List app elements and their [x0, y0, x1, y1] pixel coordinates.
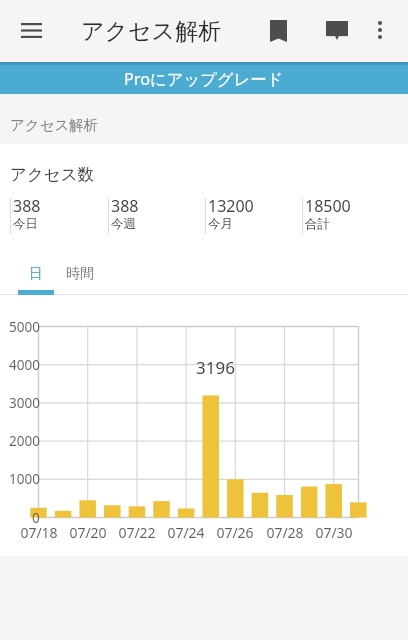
staticText: 07/30 — [315, 523, 353, 542]
staticText: 今日 — [13, 216, 38, 232]
staticText: アクセス数 — [10, 164, 95, 185]
staticText: 388 — [13, 195, 41, 217]
staticText: 0 — [32, 509, 40, 527]
staticText: 07/20 — [69, 523, 107, 542]
button[interactable]: 388 — [108, 195, 205, 235]
staticText: 5000 — [9, 318, 40, 336]
staticText: Proにアップグレード — [124, 68, 284, 90]
button[interactable]: Bookmark — [255, 7, 302, 54]
staticText: 07/28 — [266, 523, 304, 542]
staticText: 2000 — [9, 432, 40, 450]
staticText: 1000 — [9, 470, 40, 488]
button[interactable]: Comments — [313, 7, 360, 54]
staticText: 07/26 — [216, 523, 254, 542]
button[interactable]: More options — [357, 7, 403, 53]
staticText: 時間 — [66, 265, 94, 283]
staticText: 07/24 — [167, 523, 205, 542]
button[interactable]: 日 — [18, 252, 54, 295]
button[interactable]: 18500 — [302, 195, 399, 235]
staticText: 今週 — [111, 216, 136, 232]
staticText: アクセス解析 — [10, 116, 99, 134]
staticText: 4000 — [9, 356, 40, 374]
staticText: 3000 — [9, 394, 40, 412]
staticText: 07/18 — [20, 523, 58, 542]
button[interactable]: 時間 — [62, 252, 98, 295]
staticText: 07/22 — [118, 523, 156, 542]
staticText: 3196 — [196, 356, 235, 379]
staticText: 日 — [29, 265, 43, 283]
staticText: アクセス解析 — [81, 17, 222, 46]
staticText: 388 — [111, 195, 139, 217]
button[interactable]: Proにアップグレード — [0, 63, 408, 94]
staticText: 合計 — [305, 216, 330, 232]
button[interactable]: Open navigation menu — [8, 7, 55, 54]
staticText: 18500 — [305, 195, 351, 217]
button[interactable]: 13200 — [205, 195, 302, 235]
staticText: 今月 — [208, 216, 233, 232]
button[interactable]: 388 — [10, 195, 108, 235]
staticText: 13200 — [208, 195, 254, 217]
